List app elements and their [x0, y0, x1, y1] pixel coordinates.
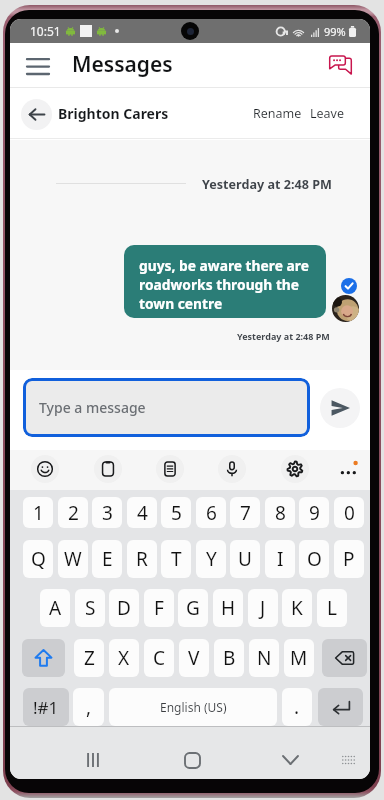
button[interactable]: guys, be aware there are roadworks throu…	[124, 245, 326, 318]
button[interactable]: K	[282, 589, 312, 627]
button[interactable]: G	[178, 589, 208, 627]
staticText: F	[154, 595, 164, 621]
staticText: Y	[206, 546, 217, 572]
staticText: C	[153, 645, 166, 671]
button[interactable]: Settings	[281, 455, 309, 483]
staticText: 9	[309, 500, 320, 526]
staticText: H	[221, 595, 236, 621]
staticText: W	[64, 546, 82, 572]
staticText: English (US)	[160, 699, 227, 715]
staticText: 6	[206, 500, 217, 526]
button[interactable]: 3	[92, 497, 122, 528]
staticText: Z	[84, 645, 95, 671]
button[interactable]: 0	[334, 497, 364, 528]
staticText: X	[118, 645, 130, 671]
button[interactable]: 1	[23, 497, 53, 528]
button[interactable]: Space	[109, 688, 277, 726]
staticText: N	[257, 645, 272, 671]
button[interactable]: 9	[299, 497, 329, 528]
button[interactable]: U	[230, 540, 260, 578]
button[interactable]: Text	[156, 455, 184, 483]
staticText: Leave	[310, 105, 345, 122]
staticText: G	[186, 595, 200, 621]
button[interactable]: T	[161, 540, 191, 578]
button[interactable]: 2	[58, 497, 88, 528]
staticText: K	[291, 595, 303, 621]
button[interactable]: Switch keyboard	[331, 743, 365, 777]
button[interactable]: O	[299, 540, 329, 578]
staticText: 5	[171, 500, 182, 526]
button[interactable]: Clipboard	[94, 455, 122, 483]
button[interactable]: Emoji	[31, 455, 59, 483]
button[interactable]: 5	[161, 497, 191, 528]
button[interactable]: Type a message	[23, 378, 310, 437]
button[interactable]: M	[284, 639, 314, 677]
button[interactable]: Voice input	[218, 455, 246, 483]
staticText: 10:51	[30, 23, 61, 39]
button[interactable]: H	[213, 589, 243, 627]
button[interactable]: Send	[320, 388, 360, 428]
button[interactable]: Hide keyboard	[273, 743, 307, 777]
staticText: Yesterday at 2:48 PM	[202, 176, 332, 193]
staticText: A	[49, 595, 62, 621]
button[interactable]: E	[92, 540, 122, 578]
button[interactable]: F	[144, 589, 174, 627]
button[interactable]: More options	[333, 454, 365, 486]
button[interactable]: Q	[23, 540, 53, 578]
staticText: E	[102, 546, 113, 572]
button[interactable]: I	[265, 540, 295, 578]
button[interactable]: 6	[196, 497, 226, 528]
button[interactable]: Recent apps	[76, 743, 110, 777]
button[interactable]: Y	[196, 540, 226, 578]
button[interactable]: 8	[265, 497, 295, 528]
button[interactable]: W	[58, 540, 88, 578]
staticText: 3	[102, 500, 113, 526]
button[interactable]: New conversation	[324, 48, 356, 80]
button[interactable]: Z	[74, 639, 104, 677]
staticText: 0	[344, 500, 355, 526]
button[interactable]: P	[334, 540, 364, 578]
staticText: guys, be aware there are roadworks throu…	[139, 256, 316, 313]
button[interactable]: D	[109, 589, 139, 627]
staticText: J	[260, 595, 266, 621]
button[interactable]: Rename	[249, 98, 306, 129]
button[interactable]: 7	[230, 497, 260, 528]
button[interactable]: Enter	[318, 688, 363, 726]
staticText: Messages	[72, 50, 173, 79]
staticText: .	[294, 694, 300, 720]
staticText: !#1	[33, 696, 59, 719]
staticText: 2	[68, 500, 79, 526]
button[interactable]: B	[214, 639, 244, 677]
staticText: D	[117, 595, 131, 621]
staticText: O	[307, 546, 322, 572]
button[interactable]: Comma	[73, 688, 104, 726]
button[interactable]: N	[249, 639, 279, 677]
button[interactable]: R	[127, 540, 157, 578]
staticText: Type a message	[39, 398, 146, 417]
staticText: I	[277, 546, 284, 572]
button[interactable]: Period	[282, 688, 312, 726]
staticText: Yesterday at 2:48 PM	[237, 330, 330, 342]
button[interactable]: Backspace	[322, 639, 367, 677]
button[interactable]: L	[317, 589, 347, 627]
button[interactable]: C	[144, 639, 174, 677]
button[interactable]: Home	[175, 743, 209, 777]
button[interactable]: A	[40, 589, 70, 627]
button[interactable]: Back	[21, 99, 52, 130]
button[interactable]: X	[109, 639, 139, 677]
button[interactable]: Menu	[18, 46, 58, 86]
button[interactable]: Shift	[22, 639, 65, 677]
button[interactable]: Symbols	[23, 688, 69, 726]
staticText: Rename	[253, 105, 302, 122]
staticText: 7	[240, 500, 251, 526]
button[interactable]: J	[248, 589, 278, 627]
staticText: V	[188, 645, 200, 671]
staticText: Brighton Carers	[58, 104, 169, 123]
staticText: T	[171, 546, 182, 572]
button[interactable]: 4	[127, 497, 157, 528]
staticText: 4	[137, 500, 148, 526]
button[interactable]: Leave	[306, 98, 349, 129]
button[interactable]: S	[75, 589, 105, 627]
staticText: 1	[33, 500, 44, 526]
button[interactable]: V	[179, 639, 209, 677]
